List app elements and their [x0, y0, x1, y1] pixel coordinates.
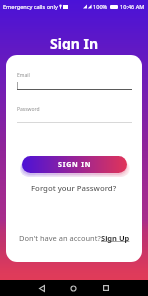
button[interactable]: Home	[62, 280, 85, 296]
button[interactable]: Sign Up	[101, 233, 130, 243]
staticText: Emergency calls only	[3, 3, 58, 11]
staticText: 100%	[93, 3, 108, 11]
staticText: Sign In	[50, 34, 99, 50]
button[interactable]: SIGN IN	[22, 156, 127, 173]
staticText: 10:46 AM	[120, 3, 145, 11]
button[interactable]: Recent apps	[94, 280, 117, 296]
staticText: Forgot your Password?	[31, 183, 117, 194]
staticText: Don't have an account?	[19, 233, 101, 243]
button[interactable]: Forgot your Password?	[6, 183, 142, 194]
staticText: Email	[17, 72, 30, 79]
staticText: SIGN IN	[58, 160, 92, 170]
staticText: Password	[17, 106, 40, 113]
staticText: Sign Up	[101, 233, 130, 243]
button[interactable]: Back	[30, 280, 53, 296]
